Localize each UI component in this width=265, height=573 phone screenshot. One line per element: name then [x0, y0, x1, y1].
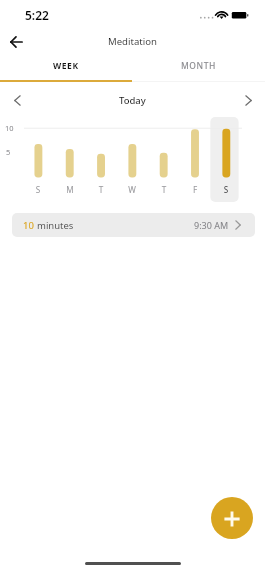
button[interactable]: 10	[12, 213, 255, 237]
staticText: T	[156, 184, 172, 195]
staticText: 5	[6, 147, 11, 157]
staticText: T	[93, 184, 109, 195]
staticText: 10	[5, 123, 14, 133]
staticText: M	[62, 184, 78, 195]
staticText: Meditation	[108, 35, 158, 48]
staticText: 9:30 AM	[194, 219, 229, 231]
staticText: 5:22	[25, 7, 49, 23]
staticText: S	[30, 184, 46, 195]
staticText: S	[218, 184, 234, 195]
staticText: minutes	[37, 219, 74, 232]
button[interactable]: MONTH	[132, 56, 265, 82]
staticText: Today	[119, 94, 146, 107]
staticText: MONTH	[181, 60, 216, 72]
staticText: F	[187, 184, 203, 195]
staticText: W	[124, 184, 140, 195]
staticText: WEEK	[53, 60, 79, 72]
button[interactable]: Back	[3, 28, 30, 55]
button[interactable]: Next week	[237, 89, 259, 111]
button[interactable]: Previous week	[6, 89, 28, 111]
button[interactable]: Add session	[211, 497, 253, 539]
button[interactable]: WEEK	[0, 56, 132, 82]
staticText: 10	[23, 219, 34, 232]
